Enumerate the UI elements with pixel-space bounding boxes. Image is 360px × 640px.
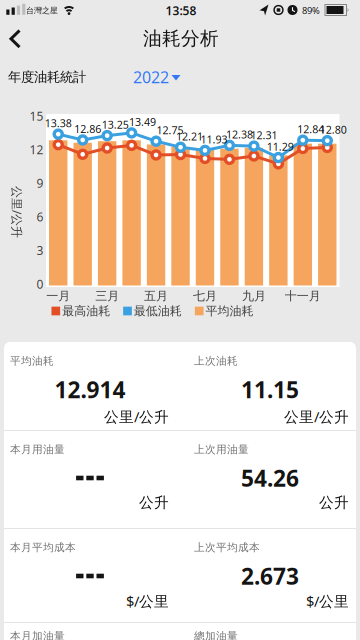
staticText: 總加油量 — [194, 629, 238, 640]
staticText: 12.914 — [54, 374, 125, 404]
staticText: 上次油耗 — [194, 354, 238, 367]
staticText: 12.38 — [226, 127, 253, 141]
staticText: 上次用油量 — [194, 443, 249, 456]
staticText: 一月 — [46, 289, 70, 303]
staticText: 13.38 — [45, 116, 72, 130]
staticText: 十一月 — [285, 289, 321, 303]
staticText: 七月 — [193, 289, 217, 303]
staticText: 台灣之星 — [26, 6, 58, 15]
staticText: 最低油耗 — [134, 304, 182, 318]
staticText: $/公里 — [306, 591, 349, 611]
staticText: 平均油耗 — [10, 354, 54, 367]
staticText: 2.673 — [241, 561, 299, 591]
staticText: 89% — [302, 4, 320, 17]
staticText: 12.86 — [74, 122, 101, 136]
staticText: 公里/公升 — [284, 407, 349, 426]
staticText: 本月平均成本 — [10, 541, 76, 554]
staticText: 11.29 — [267, 139, 294, 154]
staticText: 12.75 — [157, 123, 184, 137]
staticText: 2022 — [133, 66, 169, 88]
staticText: 11.93 — [200, 132, 227, 146]
staticText: $/公里 — [126, 591, 169, 611]
staticText: 本月用油量 — [10, 443, 65, 456]
staticText: 12.31 — [250, 128, 277, 142]
staticText: 五月 — [144, 289, 168, 303]
staticText: 12 — [29, 142, 43, 157]
staticText: 0 — [36, 276, 43, 292]
staticText: 54.26 — [241, 463, 299, 493]
staticText: 公里/公升 — [0, 204, 43, 220]
staticText: 13.49 — [129, 115, 156, 129]
staticText: 上次平均成本 — [194, 541, 260, 554]
staticText: 年度油耗統計 — [8, 69, 86, 85]
button[interactable]: 2022 — [126, 64, 186, 90]
staticText: 公里/公升 — [104, 407, 169, 426]
staticText: 3 — [36, 242, 43, 258]
staticText: 九月 — [242, 289, 266, 303]
staticText: 最高油耗 — [62, 304, 110, 318]
staticText: 11.15 — [241, 374, 299, 404]
staticText: 公升 — [319, 493, 349, 511]
staticText: 15 — [29, 108, 43, 124]
staticText: 13:58 — [165, 2, 196, 18]
staticText: 本月加油量 — [10, 629, 65, 640]
staticText: 油耗分析 — [143, 27, 219, 50]
button[interactable]: Back — [4, 21, 44, 57]
staticText: 公升 — [139, 493, 169, 511]
staticText: 9 — [36, 175, 43, 191]
staticText: 13.25 — [102, 117, 129, 132]
staticText: 12.21 — [176, 129, 203, 143]
staticText: 12.80 — [320, 123, 347, 137]
staticText: 平均油耗 — [205, 304, 253, 318]
staticText: 12.84 — [297, 122, 324, 136]
staticText: 三月 — [95, 289, 119, 303]
staticText: 6 — [36, 209, 43, 225]
